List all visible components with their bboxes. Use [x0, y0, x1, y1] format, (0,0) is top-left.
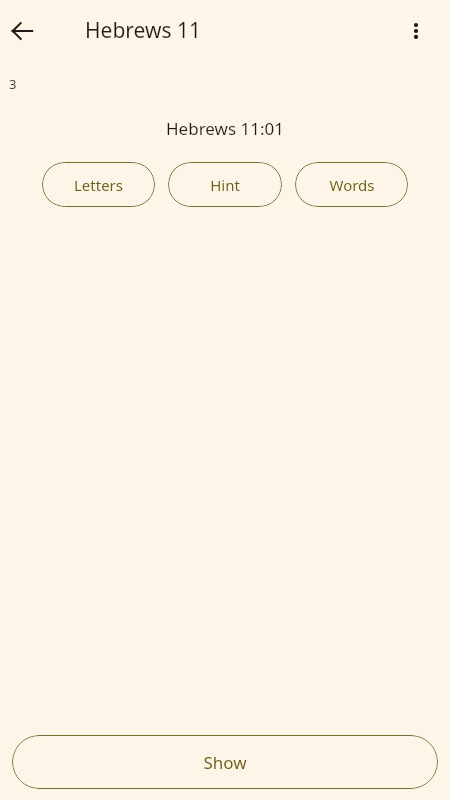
button[interactable]: More options: [392, 7, 440, 55]
staticText: Words: [329, 175, 375, 195]
staticText: Show: [203, 751, 247, 774]
staticText: Hebrews 11: [85, 16, 202, 45]
button[interactable]: Words: [295, 162, 408, 207]
button[interactable]: Letters: [42, 162, 155, 207]
staticText: Letters: [74, 175, 123, 195]
staticText: 3: [9, 75, 17, 93]
button[interactable]: Hint: [168, 162, 282, 207]
button[interactable]: Show: [12, 735, 438, 789]
staticText: Hint: [210, 175, 240, 195]
staticText: Hebrews 11:01: [0, 117, 450, 140]
button[interactable]: Back: [10, 19, 34, 43]
